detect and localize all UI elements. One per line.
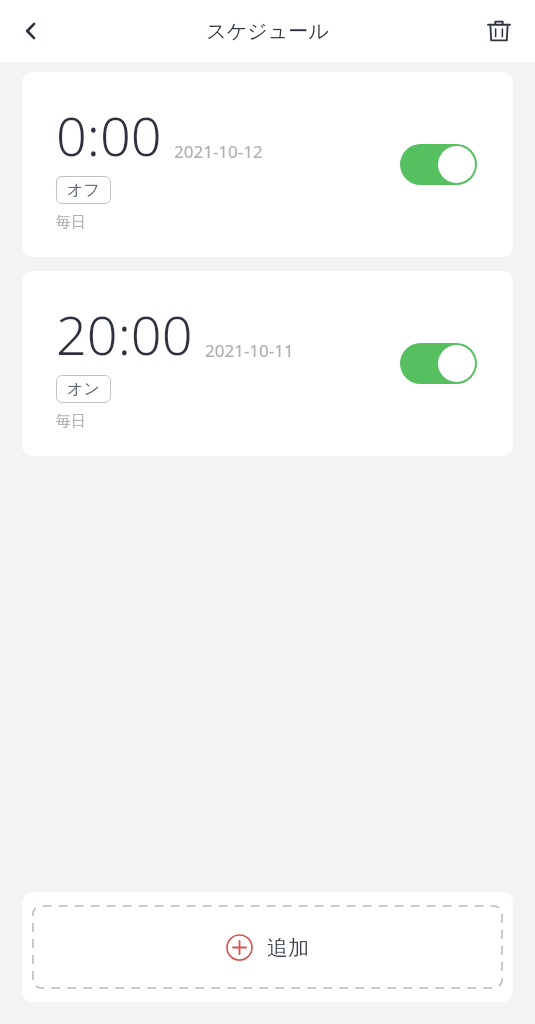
staticText: 2021-10-11 [205,339,294,362]
staticText: オフ [67,180,100,200]
button[interactable]: 20:00 [22,271,513,456]
button[interactable]: Toggle schedule [400,144,477,185]
button[interactable]: 追加 [22,892,513,1002]
staticText: 2021-10-12 [174,140,263,163]
staticText: 20:00 [56,297,193,371]
button[interactable]: Toggle schedule [400,343,477,384]
staticText: オン [67,379,100,399]
staticText: 毎日 [56,412,86,431]
button[interactable]: オフ [67,180,100,200]
staticText: スケジュール [206,19,329,44]
button[interactable]: Delete [477,9,521,53]
button[interactable]: オン [67,379,100,399]
staticText: 0:00 [56,98,162,172]
staticText: 毎日 [56,213,86,232]
button[interactable]: 0:00 [22,72,513,257]
staticText: 追加 [267,935,309,961]
button[interactable]: Back [8,8,54,54]
